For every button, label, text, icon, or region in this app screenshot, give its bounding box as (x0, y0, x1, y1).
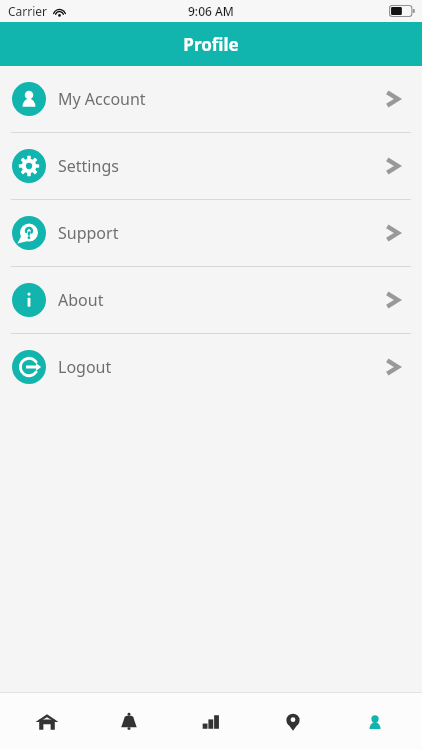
staticText: My Account (58, 88, 146, 110)
staticText: Profile (183, 33, 239, 56)
button[interactable]: Location (258, 693, 328, 750)
staticText: 9:06 AM (188, 3, 234, 19)
button[interactable]: About (0, 267, 422, 333)
button[interactable]: Support (0, 200, 422, 266)
button[interactable]: Home (12, 693, 82, 750)
button[interactable]: Profile (340, 693, 410, 750)
staticText: Settings (58, 155, 119, 177)
button[interactable]: Logout (0, 334, 422, 400)
staticText: Logout (58, 356, 112, 378)
button[interactable]: Stats (176, 693, 246, 750)
staticText: Carrier (8, 3, 48, 19)
button[interactable]: Notifications (94, 693, 164, 750)
staticText: About (58, 289, 104, 311)
button[interactable]: My Account (0, 66, 422, 132)
button[interactable]: Settings (0, 133, 422, 199)
staticText: Support (58, 222, 119, 244)
